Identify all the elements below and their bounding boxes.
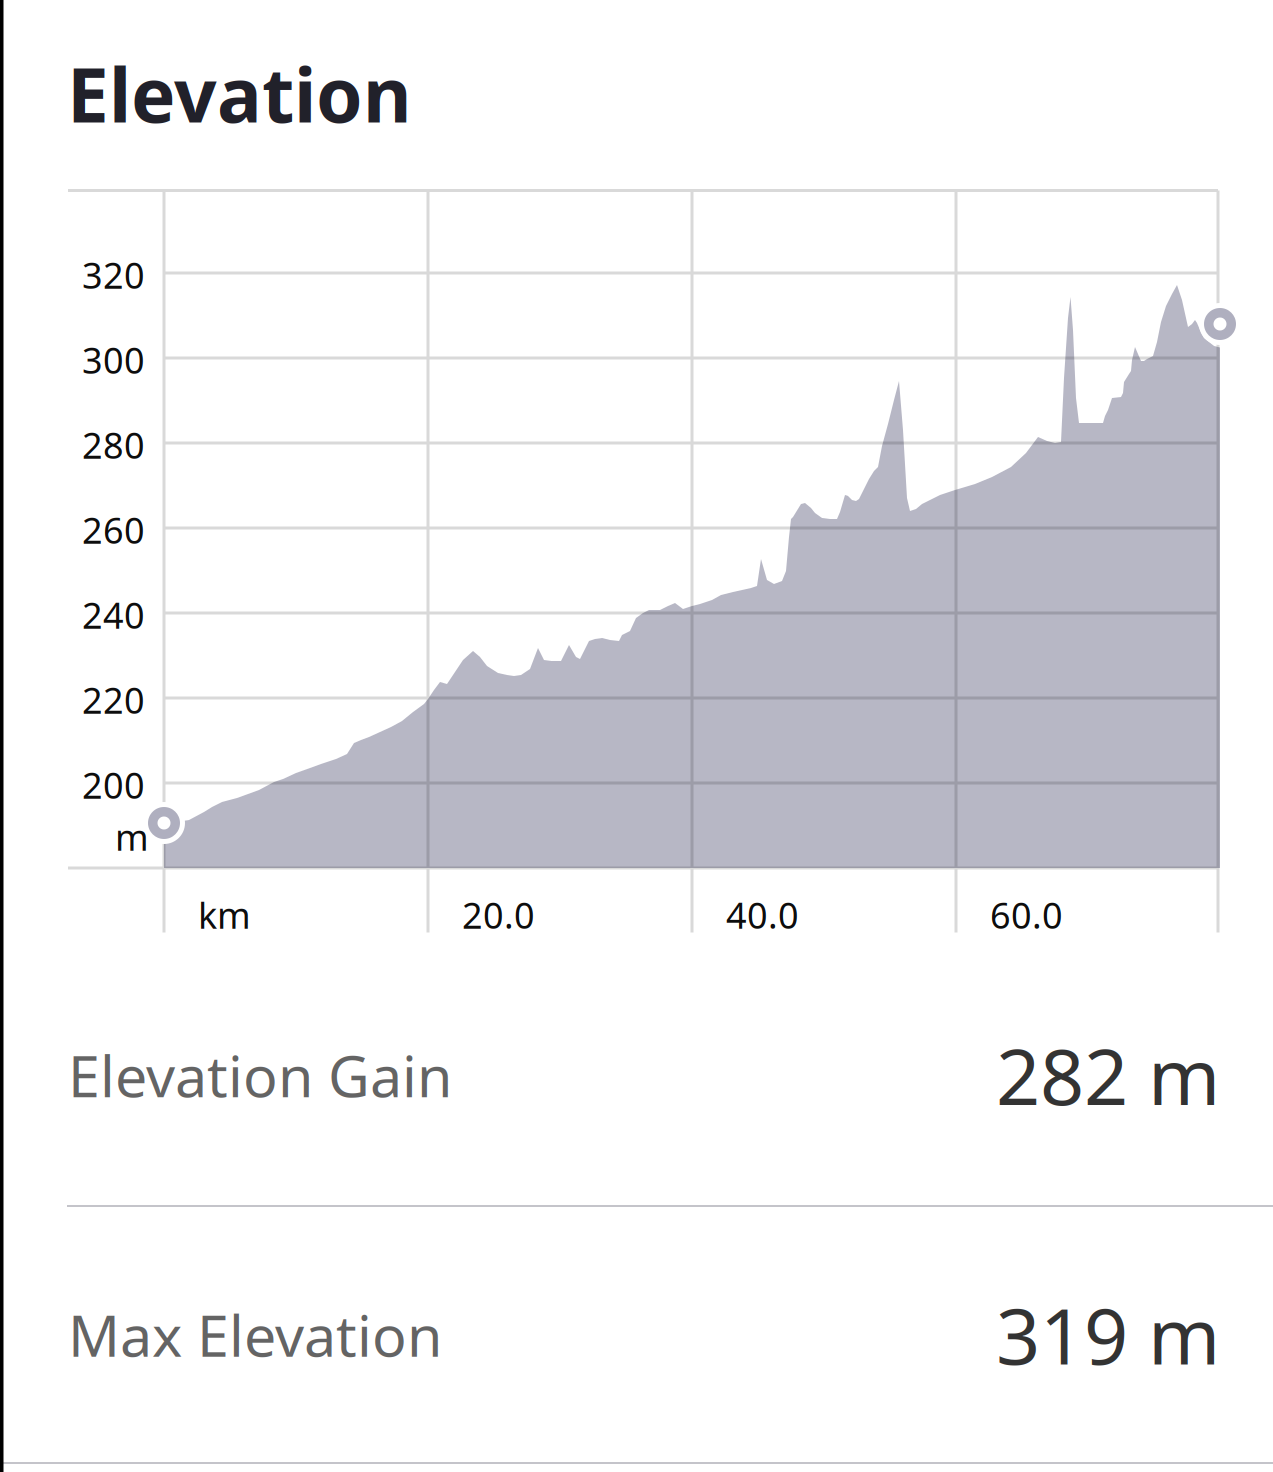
staticText: Elevation (67, 44, 412, 143)
staticText: 200 (82, 761, 145, 809)
staticText: 20.0 (462, 891, 535, 939)
staticText: 220 (82, 676, 145, 724)
staticText: 280 (82, 421, 145, 469)
staticText: Max Elevation (68, 1296, 442, 1372)
staticText: km (198, 891, 251, 939)
staticText: 300 (82, 336, 145, 384)
staticText: 282 m (996, 1024, 1220, 1126)
staticText: 319 m (996, 1283, 1220, 1386)
staticText: 260 (82, 506, 145, 554)
button[interactable]: Elevation Gain (0, 945, 1273, 1205)
staticText: 40.0 (726, 891, 799, 939)
staticText: 320 (82, 251, 145, 299)
staticText: 240 (82, 591, 145, 639)
button[interactable]: Max Elevation (0, 1207, 1273, 1462)
staticText: Elevation Gain (68, 1037, 452, 1113)
staticText: 60.0 (990, 891, 1063, 939)
staticText: m (115, 813, 149, 861)
